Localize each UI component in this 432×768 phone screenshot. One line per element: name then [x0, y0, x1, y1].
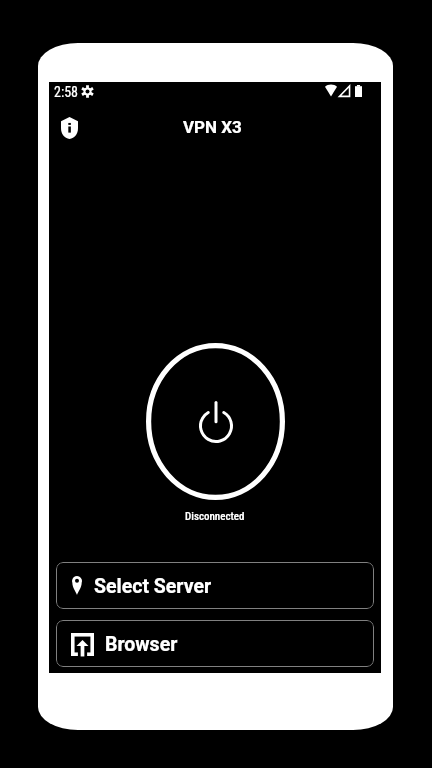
- button[interactable]: Browser: [56, 620, 374, 667]
- staticText: 2:58: [54, 84, 79, 100]
- button[interactable]: Info: [55, 114, 83, 142]
- staticText: VPN X3: [183, 117, 242, 137]
- staticText: Select Server: [94, 575, 212, 598]
- staticText: Disconnected: [185, 510, 245, 523]
- button[interactable]: Select Server: [56, 562, 374, 609]
- staticText: Browser: [105, 633, 178, 656]
- button[interactable]: Connect: [146, 343, 285, 500]
